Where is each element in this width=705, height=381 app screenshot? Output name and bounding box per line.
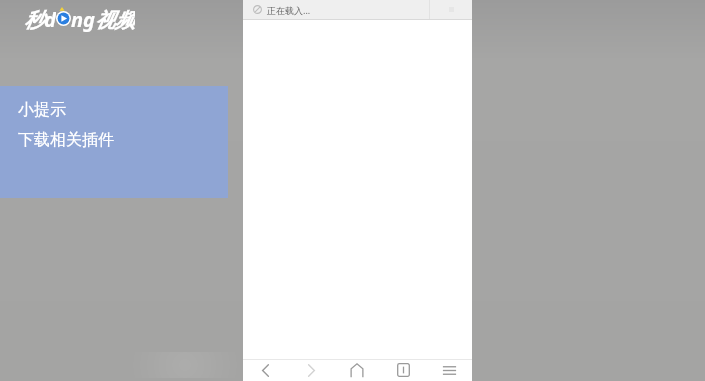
button[interactable]: 秒dong视频 logo [24, 6, 135, 32]
button[interactable]: 正在载入... [243, 0, 472, 19]
staticText: 小提示 [18, 100, 66, 120]
button[interactable]: Home [334, 359, 380, 381]
button[interactable]: Tabs [380, 359, 426, 381]
staticText: 正在载入... [267, 4, 311, 16]
button[interactable]: 小提示 [0, 86, 228, 198]
button[interactable]: Forward [288, 359, 334, 381]
staticText: 秒d [24, 6, 56, 32]
button[interactable]: Menu [426, 359, 472, 381]
staticText: ng视频 [71, 6, 135, 32]
button[interactable]: Back [243, 359, 288, 381]
staticText: 下载相关插件 [18, 130, 114, 150]
